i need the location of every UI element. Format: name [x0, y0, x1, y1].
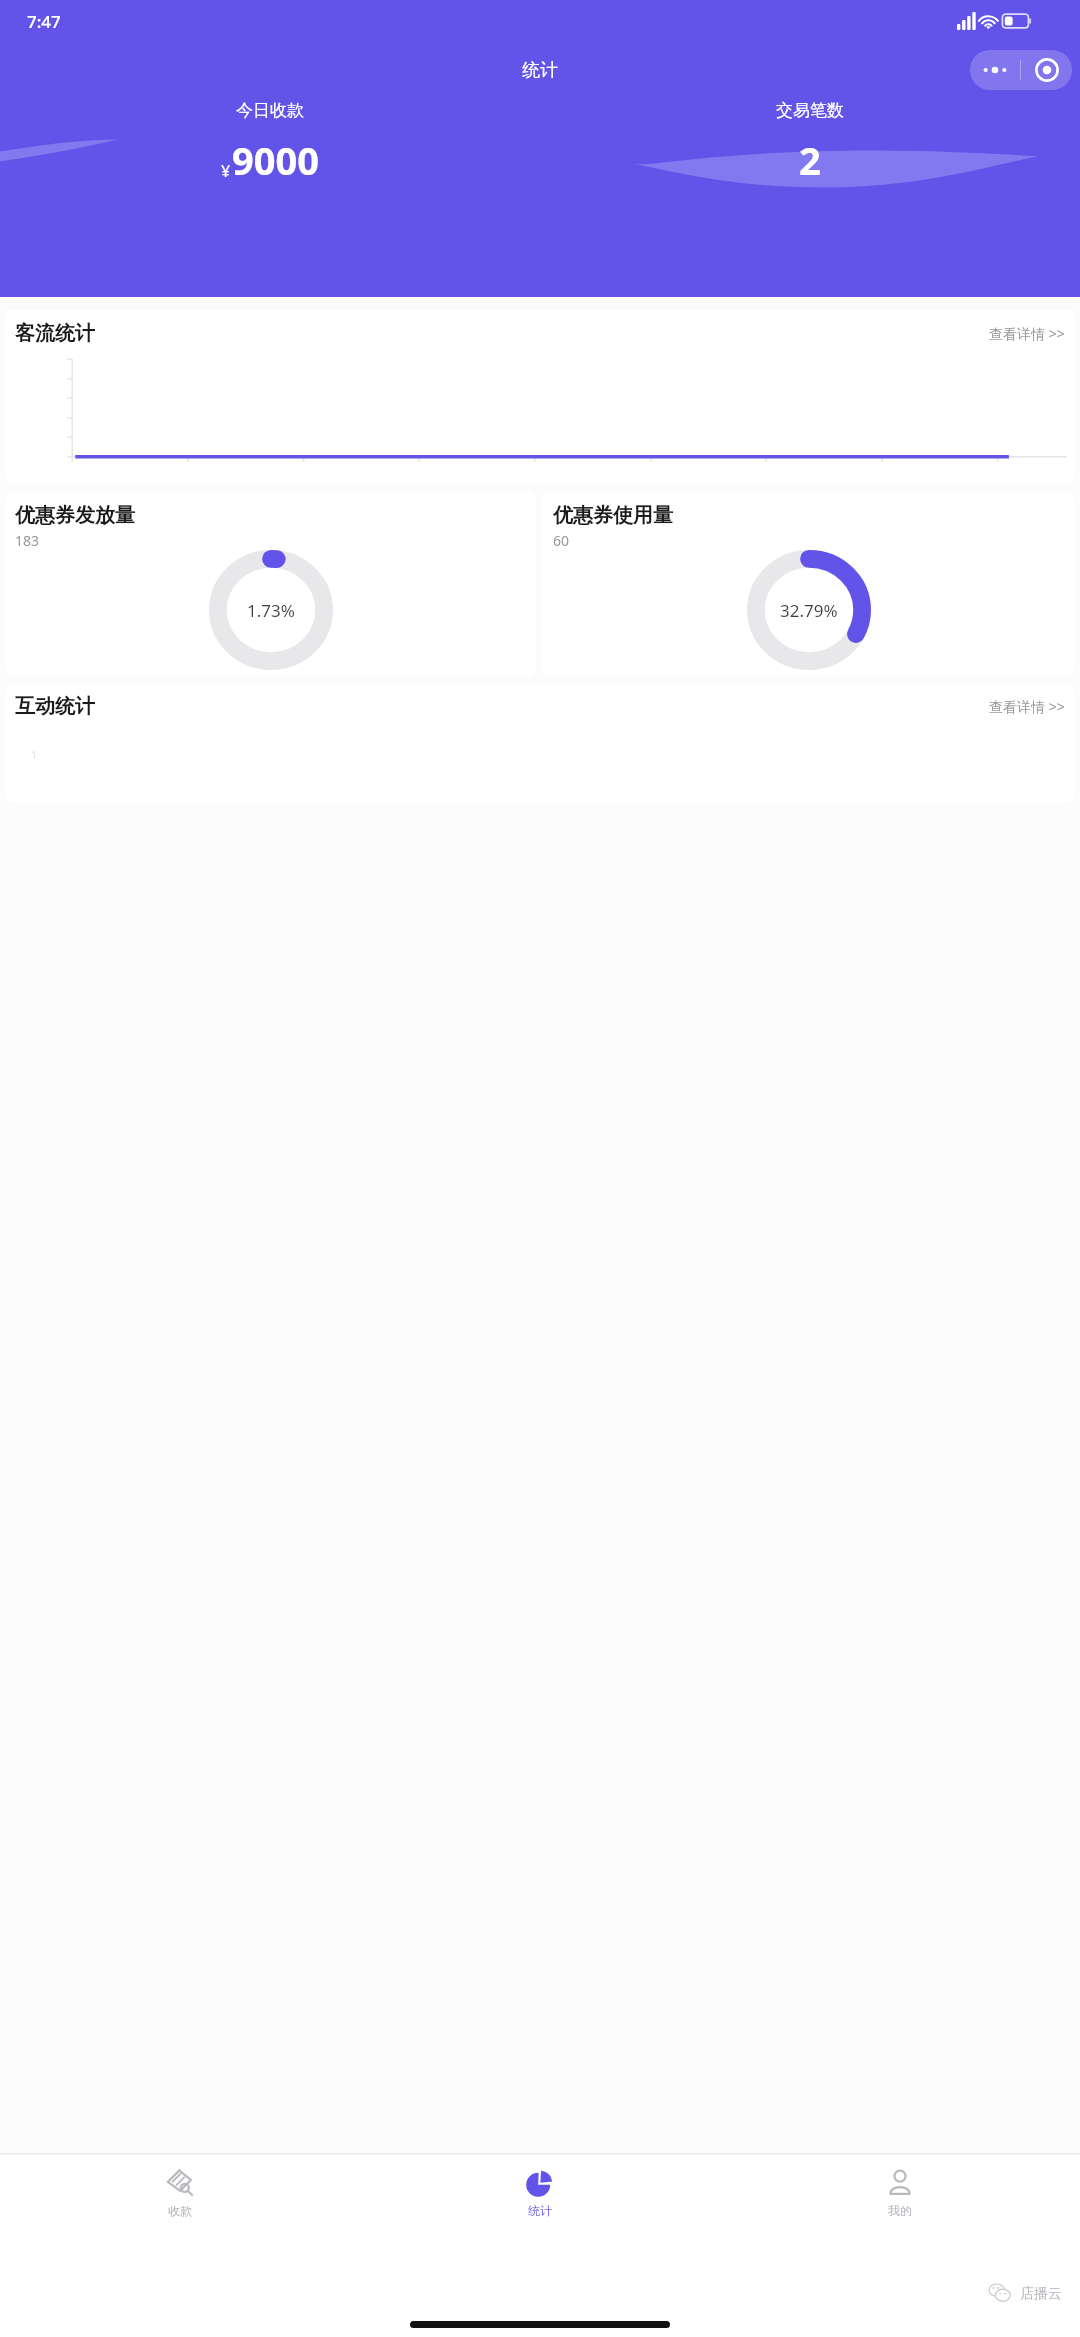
staticText: 优惠券使用量	[553, 503, 673, 528]
staticText: 收款	[168, 2203, 192, 2218]
button[interactable]: 统计	[360, 2154, 720, 2250]
staticText: 2	[799, 134, 821, 186]
staticText: 查看详情 >>	[989, 697, 1065, 716]
staticText: 9000	[232, 134, 319, 186]
staticText: 统计	[528, 2203, 552, 2218]
staticText: 1	[31, 747, 38, 762]
button[interactable]: 查看详情 >>	[987, 322, 1067, 345]
staticText: 今日收款	[236, 100, 304, 121]
staticText: 32.79%	[780, 599, 838, 622]
staticText: 互动统计	[15, 694, 95, 719]
staticText: 交易笔数	[776, 100, 844, 121]
staticText: 60	[553, 531, 570, 550]
staticText: 客流统计	[15, 321, 95, 346]
button[interactable]: 收款	[0, 2154, 360, 2250]
button[interactable]: 查看详情 >>	[987, 695, 1067, 718]
staticText: 统计	[522, 59, 558, 82]
staticText: 查看详情 >>	[989, 324, 1065, 343]
button[interactable]: More options	[970, 50, 1072, 90]
staticText: 我的	[888, 2203, 912, 2218]
staticText: 优惠券发放量	[15, 503, 135, 528]
staticText: 183	[15, 531, 40, 550]
button[interactable]: Target	[1021, 50, 1072, 90]
button[interactable]: 我的	[720, 2154, 1080, 2250]
button[interactable]: 优惠券使用量	[543, 492, 1075, 676]
staticText: 1.73%	[247, 599, 295, 622]
button[interactable]: 优惠券发放量	[5, 492, 536, 676]
staticText: ¥	[221, 160, 231, 182]
button[interactable]: 互动统计	[5, 683, 1075, 803]
button[interactable]: More options	[970, 50, 1020, 90]
button[interactable]: 客流统计	[5, 310, 1075, 485]
staticText: 店播云	[1020, 2285, 1062, 2303]
staticText: 7:47	[27, 10, 61, 33]
